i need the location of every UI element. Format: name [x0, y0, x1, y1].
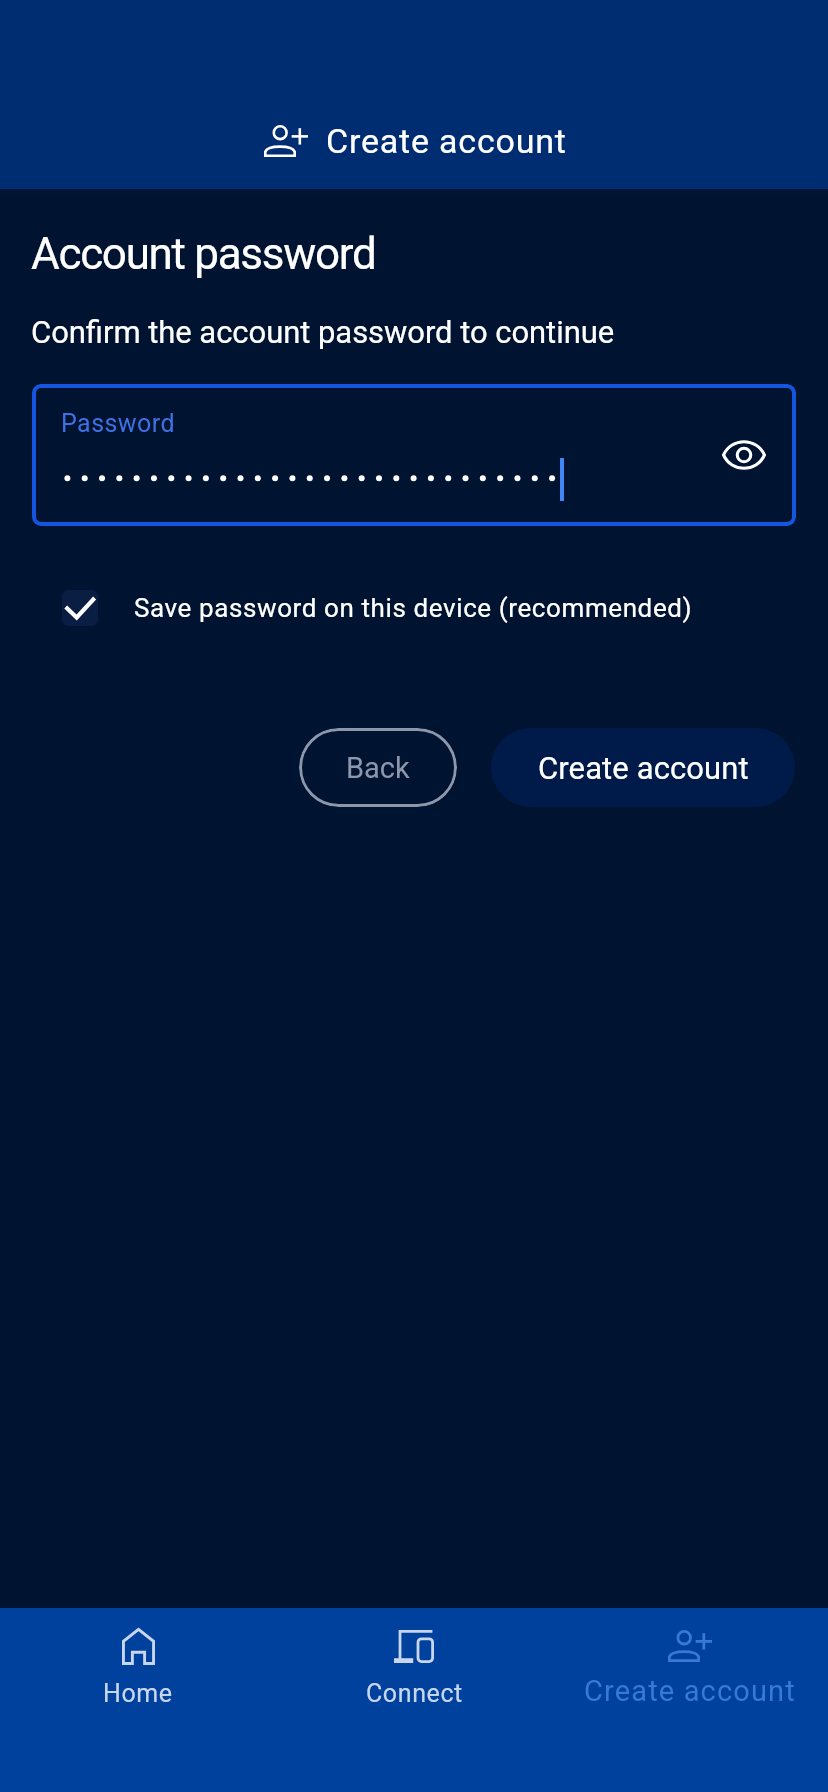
staticText: Home — [103, 1679, 173, 1708]
staticText: Back — [346, 751, 410, 785]
button[interactable]: Connect — [276, 1608, 552, 1792]
button[interactable]: Save password on this device (recommende… — [62, 590, 693, 626]
staticText: Confirm the account password to continue — [31, 314, 615, 350]
staticText: Save password on this device (recommende… — [134, 593, 693, 623]
button[interactable]: Create account — [552, 1608, 828, 1792]
staticText: Connect — [366, 1679, 463, 1708]
staticText: Password — [61, 409, 176, 438]
button[interactable]: Show password — [712, 423, 776, 487]
staticText: Create account — [538, 750, 749, 786]
staticText: Create account — [584, 1674, 796, 1708]
button[interactable]: Create account — [491, 728, 795, 807]
staticText: Account password — [31, 228, 376, 280]
staticText: Create account — [326, 121, 567, 161]
button[interactable]: Password — [32, 384, 796, 526]
button[interactable]: Back — [299, 728, 457, 807]
button[interactable]: Home — [0, 1608, 276, 1792]
